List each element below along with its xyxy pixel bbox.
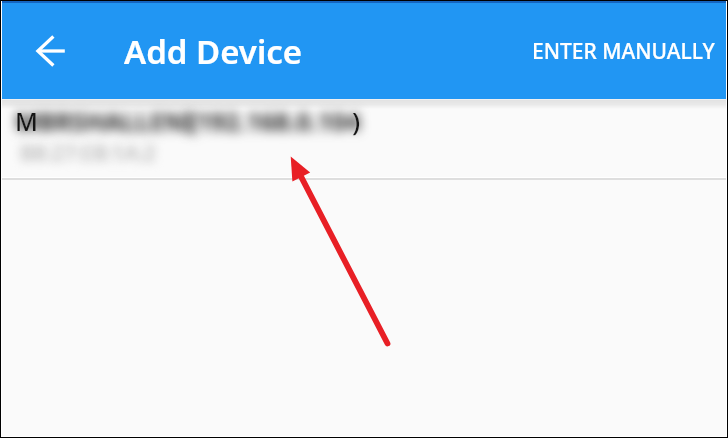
button[interactable]: ENTER MANUALLY — [520, 23, 727, 80]
staticText: MBRSHALLENI — [15, 104, 194, 138]
staticText: (192.168.0.104 — [188, 104, 361, 138]
button[interactable]: Back — [23, 23, 79, 79]
staticText: ENTER MANUALLY — [532, 37, 715, 66]
staticText: ) — [352, 103, 361, 138]
staticText: MBRSHALLENI — [15, 104, 194, 138]
staticText: M — [15, 104, 38, 138]
staticText: (192.168.0.104 — [188, 104, 361, 138]
staticText: B8:27:EB:1A:2 — [20, 139, 156, 168]
staticText: B8:27:EB:1A:2 — [20, 139, 156, 168]
staticText: B8:27:EB:1A:2 — [20, 139, 156, 168]
button[interactable]: MBRSHALLENI — [2, 98, 726, 177]
staticText: (192.168.0.104 — [188, 104, 361, 138]
staticText: MBRSHALLENI — [15, 104, 194, 138]
staticText: Add Device — [124, 29, 303, 74]
staticText: B8:27:EB:1A:2 — [20, 139, 156, 168]
